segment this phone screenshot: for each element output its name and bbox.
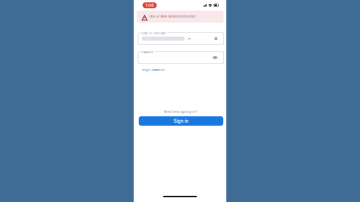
button[interactable]: Sign in [134, 116, 226, 126]
staticText: Email or username [141, 32, 166, 35]
staticText: One or more details is incorrect [149, 15, 196, 18]
staticText: Forgot password? [142, 68, 165, 71]
staticText: Need help signing in? [163, 110, 196, 114]
button[interactable]: Email or username [134, 31, 226, 45]
button[interactable]: Forgot password? [134, 67, 226, 72]
staticText: 1:08 [145, 3, 154, 8]
staticText: Password [141, 51, 153, 54]
staticText: Sign in [173, 118, 188, 124]
button[interactable]: Password [134, 50, 226, 64]
